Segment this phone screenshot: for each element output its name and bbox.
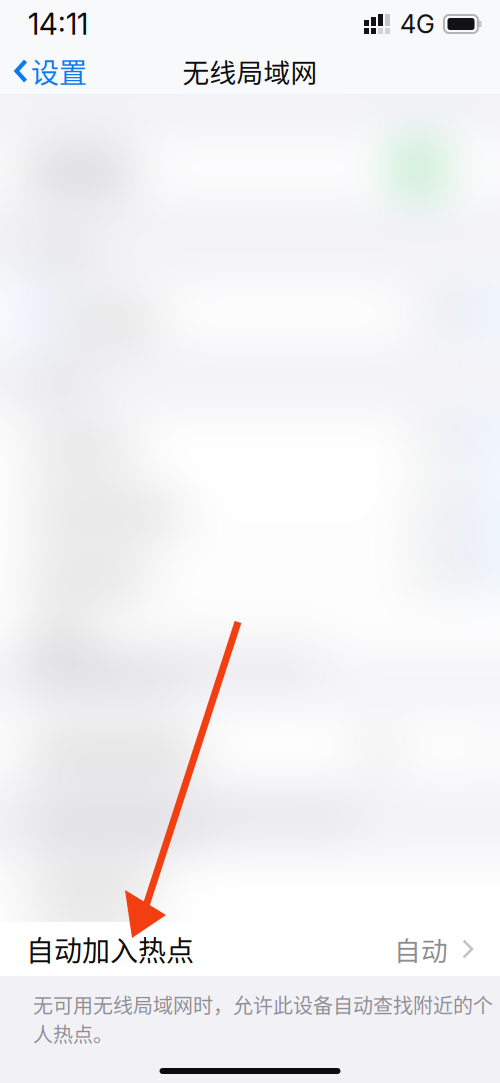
staticText: 无线局域网: [182, 52, 317, 90]
staticText: 无可用无线局域网时，允许此设备自动查找附近的个人热点。: [33, 990, 493, 1048]
staticText: 自动加入热点: [26, 929, 194, 969]
staticText: 自动: [394, 930, 448, 968]
staticText: 4G: [400, 9, 435, 39]
button[interactable]: 设置: [0, 46, 95, 96]
button[interactable]: 自动加入热点: [0, 922, 500, 976]
staticText: 14:11: [28, 6, 88, 42]
staticText: 设置: [31, 51, 87, 91]
